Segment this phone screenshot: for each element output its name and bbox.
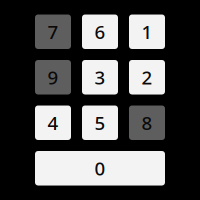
button[interactable]: 0 xyxy=(35,151,165,185)
staticText: 3 xyxy=(94,65,105,90)
staticText: 0 xyxy=(94,156,105,181)
staticText: 2 xyxy=(141,65,152,90)
button[interactable]: 1 xyxy=(129,14,165,49)
button[interactable]: 7 xyxy=(35,14,71,49)
staticText: 5 xyxy=(94,110,105,135)
staticText: 7 xyxy=(47,19,58,44)
button[interactable]: 3 xyxy=(82,60,118,94)
staticText: 6 xyxy=(94,19,105,44)
button[interactable]: 8 xyxy=(129,105,165,140)
staticText: 1 xyxy=(141,19,152,44)
staticText: 9 xyxy=(47,65,58,90)
staticText: 4 xyxy=(47,110,58,135)
button[interactable]: 9 xyxy=(35,60,71,94)
button[interactable]: 5 xyxy=(82,105,118,140)
staticText: 8 xyxy=(141,110,152,135)
button[interactable]: 4 xyxy=(35,105,71,140)
button[interactable]: 6 xyxy=(82,14,118,49)
button[interactable]: 2 xyxy=(129,60,165,94)
